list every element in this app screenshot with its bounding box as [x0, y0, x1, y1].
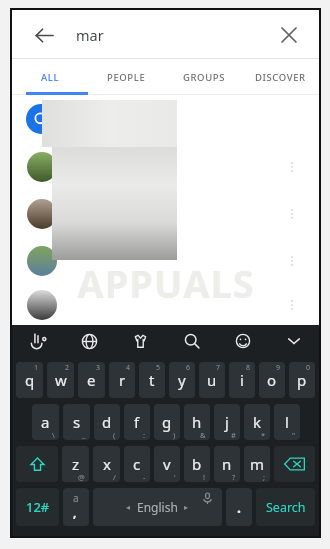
staticText: 3: [96, 363, 101, 373]
button[interactable]: Handwriting: [12, 325, 64, 357]
button[interactable]: m: [244, 446, 270, 482]
staticText: a: [73, 491, 79, 505]
staticText: 6: [186, 363, 191, 373]
button[interactable]: Emoji: [217, 325, 268, 357]
button[interactable]: More options: [279, 248, 305, 274]
staticText: _: [82, 430, 86, 440]
button[interactable]: g: [154, 404, 180, 440]
staticText: APPUALS: [77, 257, 255, 309]
staticText: s: [73, 412, 81, 432]
button[interactable]: More options: [12, 190, 319, 237]
button[interactable]: r: [109, 362, 135, 398]
button[interactable]: e: [78, 362, 105, 398]
staticText: &: [200, 430, 206, 440]
button[interactable]: f: [124, 404, 150, 440]
button[interactable]: Hide keyboard: [268, 325, 319, 357]
staticText: \: [52, 430, 55, 440]
button[interactable]: Shift: [16, 446, 58, 482]
button[interactable]: More options: [12, 143, 319, 190]
staticText: ;: [263, 472, 266, 482]
staticText: 4: [126, 363, 131, 373]
staticText: ALL: [41, 71, 60, 84]
button[interactable]: b: [184, 446, 210, 482]
staticText: 2: [65, 363, 70, 373]
staticText: n: [222, 454, 232, 474]
staticText: u: [207, 370, 217, 390]
button[interactable]: Back: [26, 18, 60, 52]
staticText: x: [103, 454, 111, 474]
button[interactable]: x: [93, 446, 120, 482]
button[interactable]: w: [47, 362, 74, 398]
staticText: ": [292, 430, 296, 440]
staticText: 5: [156, 363, 161, 373]
button[interactable]: 12#: [16, 488, 59, 526]
button[interactable]: More options: [279, 154, 305, 180]
staticText: c: [133, 454, 141, 474]
button[interactable]: v: [154, 446, 180, 482]
button[interactable]: Search: [256, 488, 315, 526]
staticText: 12#: [26, 498, 50, 516]
button[interactable]: n: [214, 446, 240, 482]
button[interactable]: More options: [12, 237, 319, 284]
staticText: ◂: [126, 503, 131, 512]
staticText: /: [113, 472, 116, 482]
button[interactable]: j: [214, 404, 240, 440]
button[interactable]: More options: [12, 284, 319, 325]
button[interactable]: Clear search: [273, 19, 305, 51]
staticText: mar: [76, 25, 104, 45]
staticText: 9: [276, 363, 281, 373]
button[interactable]: o: [259, 362, 285, 398]
staticText: ): [173, 430, 176, 440]
button[interactable]: .: [226, 488, 252, 526]
button[interactable]: s: [63, 404, 90, 440]
staticText: !: [203, 472, 206, 482]
button[interactable]: Space: [93, 488, 222, 526]
button[interactable]: k: [244, 404, 270, 440]
button[interactable]: a: [32, 404, 59, 440]
staticText: ▸: [184, 503, 189, 512]
button[interactable]: Change language: [64, 325, 115, 357]
button[interactable]: u: [199, 362, 225, 398]
staticText: *: [261, 430, 266, 440]
button[interactable]: h: [184, 404, 210, 440]
button[interactable]: Backspace: [274, 446, 315, 482]
staticText: v: [163, 454, 171, 474]
staticText: #: [231, 430, 236, 440]
staticText: GROUPS: [183, 71, 225, 84]
button[interactable]: Search: [166, 325, 217, 357]
button[interactable]: Theme: [115, 325, 166, 357]
button[interactable]: c: [124, 446, 150, 482]
button[interactable]: GROUPS: [165, 59, 242, 95]
button[interactable]: a: [63, 488, 89, 526]
staticText: ': [174, 472, 176, 482]
staticText: e: [87, 370, 96, 390]
staticText: English: [137, 499, 178, 515]
button[interactable]: More options: [279, 201, 305, 227]
button[interactable]: d: [94, 404, 120, 440]
staticText: p: [297, 370, 307, 390]
staticText: t: [149, 370, 155, 390]
staticText: o: [267, 370, 277, 390]
button[interactable]: i: [229, 362, 255, 398]
staticText: a: [41, 412, 50, 432]
button[interactable]: DISCOVER: [242, 59, 319, 95]
staticText: h: [192, 412, 202, 432]
staticText: k: [253, 412, 262, 432]
button[interactable]: t: [139, 362, 165, 398]
button[interactable]: ALL: [12, 59, 88, 95]
staticText: f: [134, 412, 140, 432]
button[interactable]: l: [274, 404, 300, 440]
button[interactable]: z: [62, 446, 89, 482]
staticText: -: [143, 472, 146, 482]
button[interactable]: PEOPLE: [88, 59, 165, 95]
button[interactable]: Search messages: [12, 95, 319, 143]
staticText: g: [162, 412, 172, 432]
staticText: 8: [246, 363, 251, 373]
button[interactable]: y: [169, 362, 195, 398]
staticText: @: [78, 472, 85, 482]
button[interactable]: p: [289, 362, 315, 398]
staticText: m: [250, 454, 265, 474]
button[interactable]: q: [16, 362, 43, 398]
button[interactable]: More options: [279, 292, 305, 318]
